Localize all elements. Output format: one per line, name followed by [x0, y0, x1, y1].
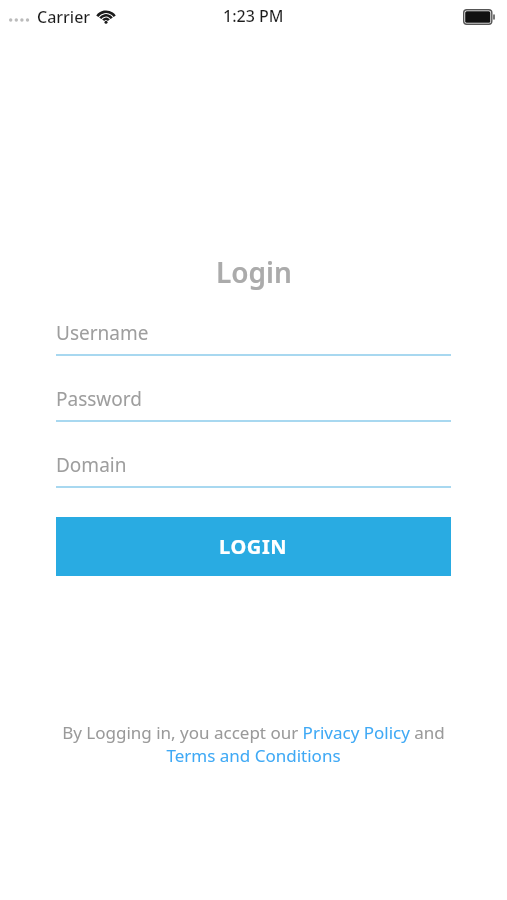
- button[interactable]: LOGIN: [56, 517, 451, 576]
- staticText: Login: [216, 253, 292, 291]
- button[interactable]: By Logging in, you accept our Privacy Po…: [40, 721, 467, 767]
- button[interactable]: Domain: [56, 444, 451, 488]
- staticText: LOGIN: [219, 533, 288, 560]
- staticText: Carrier: [37, 6, 91, 28]
- button[interactable]: Password: [56, 378, 451, 422]
- staticText: Domain: [56, 452, 127, 478]
- staticText: 1:23 PM: [223, 5, 284, 27]
- staticText: Username: [56, 320, 149, 346]
- button[interactable]: Username: [56, 312, 451, 356]
- staticText: By Logging in, you accept our Privacy Po…: [40, 721, 467, 767]
- staticText: Password: [56, 386, 142, 412]
